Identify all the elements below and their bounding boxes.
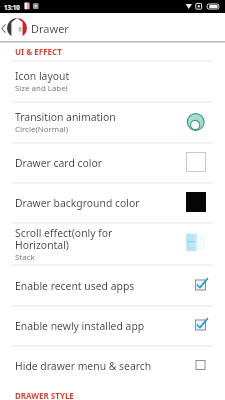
staticText: Icon layout bbox=[15, 69, 70, 83]
button[interactable]: Transition animation bbox=[0, 101, 225, 142]
staticText: Enable newly installed app bbox=[15, 319, 145, 333]
staticText: Stack bbox=[15, 252, 35, 263]
staticText: UI & EFFECT bbox=[15, 46, 62, 57]
staticText: Size and Label bbox=[15, 83, 68, 94]
button[interactable]: Enable newly installed app bbox=[0, 305, 225, 345]
staticText: Enable recent used apps bbox=[15, 279, 135, 293]
staticText: Hide drawer menu & search bbox=[15, 359, 152, 373]
button[interactable]: Enable recent used apps bbox=[0, 264, 225, 305]
staticText: 13:10 bbox=[4, 3, 20, 11]
button[interactable]: Scroll effect(only for Horizontal) bbox=[0, 222, 225, 264]
staticText: Drawer card color bbox=[15, 156, 103, 170]
staticText: Scroll effect(only for Horizontal) bbox=[15, 226, 155, 252]
staticText: DRAWER STYLE bbox=[15, 390, 74, 400]
staticText: Transition animation bbox=[15, 110, 116, 124]
staticText: Drawer background color bbox=[15, 196, 140, 210]
button[interactable]: Drawer background color bbox=[0, 182, 225, 222]
button[interactable]: Hide drawer menu & search bbox=[0, 345, 225, 385]
button[interactable]: Icon layout bbox=[0, 60, 225, 101]
staticText: Drawer bbox=[31, 21, 69, 36]
button[interactable]: Back bbox=[0, 13, 7, 43]
button[interactable]: Drawer card color bbox=[0, 142, 225, 182]
staticText: Circle(Normal) bbox=[15, 124, 69, 135]
